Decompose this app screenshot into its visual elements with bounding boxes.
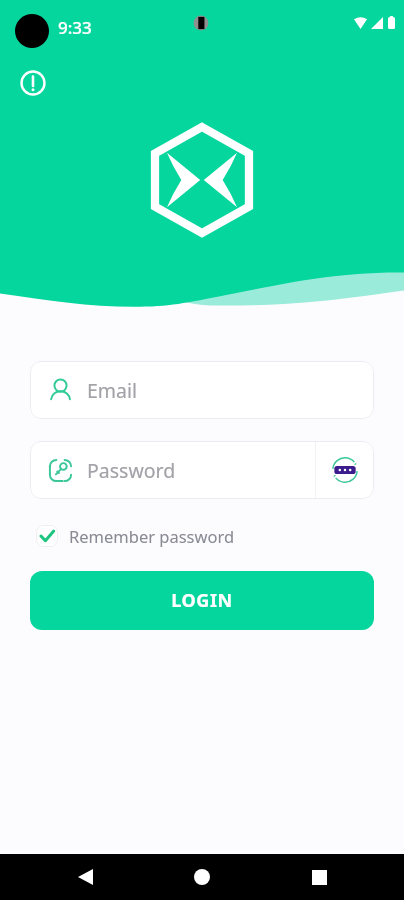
staticText: LOGIN [171,588,233,613]
button[interactable]: Email [30,361,374,419]
button[interactable]: LOGIN [30,571,374,630]
staticText: Email [87,377,138,404]
staticText: 9:33 [58,16,92,39]
button[interactable]: Password [30,441,374,499]
button[interactable]: Toggle password visibility [332,457,358,483]
button[interactable]: Home [180,854,224,900]
button[interactable]: Back [63,854,107,900]
button[interactable]: Recents [297,854,341,900]
staticText: Remember password [69,525,235,547]
staticText: Password [87,457,176,484]
button[interactable]: Alert [19,69,47,97]
button[interactable]: Remember password [36,523,235,549]
